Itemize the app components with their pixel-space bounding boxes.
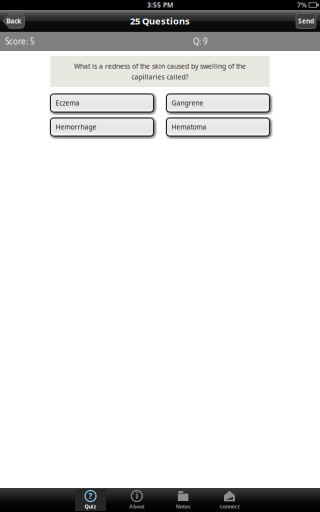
button[interactable]: Gangrene bbox=[166, 94, 269, 112]
staticText: i bbox=[136, 491, 138, 501]
button[interactable]: Notes bbox=[168, 489, 199, 511]
staticText: About bbox=[129, 503, 144, 510]
staticText: capillaries called? bbox=[131, 72, 188, 81]
staticText: Q: 9 bbox=[193, 36, 208, 47]
button[interactable]: Hemorrhage bbox=[50, 118, 153, 136]
staticText: Score: 5 bbox=[5, 36, 35, 47]
staticText: Send bbox=[298, 17, 314, 25]
button[interactable]: Back bbox=[3, 14, 24, 28]
staticText: ? bbox=[88, 491, 92, 501]
staticText: Gangrene bbox=[171, 99, 203, 107]
button[interactable]: Hematoma bbox=[166, 118, 269, 136]
staticText: Hemorrhage bbox=[55, 123, 96, 131]
staticText: Hematoma bbox=[171, 123, 206, 131]
staticText: What is a redness of the skin caused by … bbox=[74, 62, 246, 70]
button[interactable]: Send bbox=[296, 13, 316, 28]
staticText: 3:55 PM bbox=[147, 1, 173, 9]
staticText: Back bbox=[6, 17, 21, 25]
staticText: 25 Questions bbox=[130, 15, 190, 27]
staticText: 7% bbox=[297, 1, 307, 9]
button[interactable]: Connect bbox=[214, 489, 245, 511]
button[interactable]: i bbox=[121, 489, 152, 511]
button[interactable]: ? bbox=[75, 489, 106, 511]
staticText: Notes bbox=[176, 503, 191, 510]
staticText: Eczema bbox=[55, 99, 79, 107]
staticText: Connect bbox=[219, 503, 239, 510]
staticText: Quiz bbox=[84, 503, 96, 510]
button[interactable]: Eczema bbox=[50, 94, 153, 112]
